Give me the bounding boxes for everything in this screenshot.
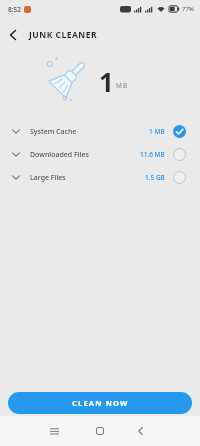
staticText: System Cache [30, 127, 77, 137]
button[interactable] [0, 22, 26, 48]
staticText: Large Files [30, 173, 66, 183]
button[interactable]: System Cache [0, 120, 200, 143]
staticText: Downloaded Files [30, 150, 89, 160]
staticText: CLEAN NOW [72, 398, 129, 408]
button[interactable]: Downloaded Files [0, 143, 200, 166]
staticText: 1 [99, 64, 114, 99]
button[interactable] [46, 423, 62, 439]
staticText: 1.5 GB [145, 173, 165, 182]
button[interactable]: CLEAN NOW [8, 392, 192, 414]
staticText: 8:52 [8, 5, 21, 14]
button[interactable] [92, 423, 108, 439]
button[interactable]: Large Files [0, 166, 200, 189]
button[interactable] [132, 423, 148, 439]
staticText: 77% [182, 5, 194, 13]
staticText: 11.6 MB [140, 150, 165, 159]
staticText: 1 MB [149, 127, 165, 136]
staticText: JUNK CLEANER [29, 29, 98, 41]
staticText: MB [116, 81, 129, 90]
